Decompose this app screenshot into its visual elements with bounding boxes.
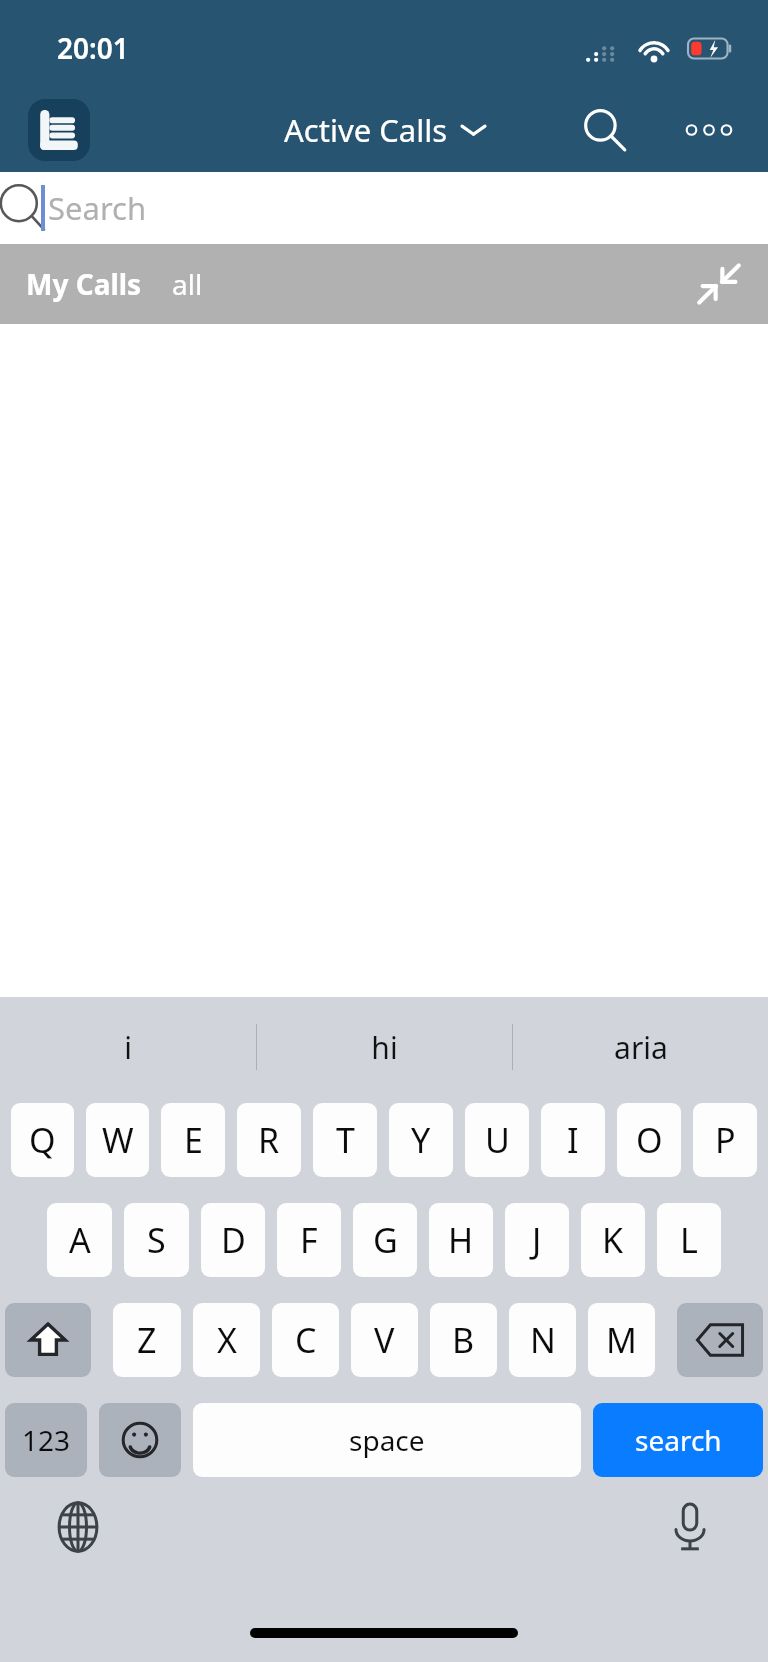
staticText: hi: [371, 1027, 398, 1068]
staticText: 20:01: [57, 29, 129, 67]
staticText: X: [217, 1317, 237, 1363]
staticText: aria: [614, 1027, 668, 1068]
button[interactable]: G: [353, 1203, 417, 1277]
button[interactable]: K: [581, 1203, 645, 1277]
staticText: W: [102, 1117, 134, 1163]
staticText: Y: [411, 1117, 431, 1163]
staticText: C: [295, 1317, 317, 1363]
button[interactable]: W: [86, 1103, 149, 1177]
staticText: H: [448, 1217, 474, 1263]
staticText: Search: [48, 187, 147, 229]
staticText: Active Calls: [284, 109, 447, 151]
staticText: L: [680, 1217, 698, 1263]
button[interactable]: C: [272, 1303, 339, 1377]
button[interactable]: Voice input: [658, 1495, 722, 1559]
staticText: Q: [29, 1117, 56, 1163]
button[interactable]: Collapse: [690, 255, 748, 313]
staticText: Z: [137, 1317, 157, 1363]
staticText: V: [374, 1317, 395, 1363]
button[interactable]: Z: [113, 1303, 181, 1377]
staticText: D: [221, 1217, 246, 1263]
button[interactable]: search: [593, 1403, 763, 1477]
button[interactable]: D: [201, 1203, 265, 1277]
staticText: B: [452, 1317, 475, 1363]
button[interactable]: Backspace: [677, 1303, 763, 1377]
button[interactable]: aria: [513, 997, 768, 1097]
button[interactable]: S: [124, 1203, 189, 1277]
staticText: i: [124, 1027, 132, 1068]
button[interactable]: L: [657, 1203, 721, 1277]
staticText: space: [349, 1421, 425, 1459]
button[interactable]: Emoji: [99, 1403, 181, 1477]
button[interactable]: Q: [11, 1103, 74, 1177]
staticText: A: [69, 1217, 91, 1263]
button[interactable]: T: [313, 1103, 377, 1177]
button[interactable]: B: [430, 1303, 497, 1377]
staticText: search: [635, 1421, 722, 1459]
staticText: J: [532, 1217, 542, 1263]
button[interactable]: O: [617, 1103, 681, 1177]
button[interactable]: E: [161, 1103, 225, 1177]
staticText: K: [602, 1217, 624, 1263]
staticText: P: [715, 1117, 736, 1163]
button[interactable]: H: [429, 1203, 493, 1277]
staticText: I: [567, 1117, 579, 1163]
button[interactable]: space: [193, 1403, 581, 1477]
button[interactable]: F: [277, 1203, 341, 1277]
button[interactable]: Search: [0, 172, 768, 244]
button[interactable]: hi: [257, 997, 512, 1097]
button[interactable]: i: [0, 997, 256, 1097]
button[interactable]: R: [237, 1103, 301, 1177]
staticText: R: [258, 1117, 280, 1163]
button[interactable]: J: [505, 1203, 569, 1277]
button[interactable]: U: [465, 1103, 529, 1177]
staticText: M: [606, 1317, 637, 1363]
button[interactable]: Active Calls: [284, 109, 485, 151]
button[interactable]: I: [541, 1103, 605, 1177]
staticText: N: [530, 1317, 556, 1363]
staticText: 123: [22, 1421, 71, 1459]
staticText: U: [485, 1117, 510, 1163]
button[interactable]: Search: [574, 99, 636, 161]
staticText: all: [172, 265, 203, 303]
staticText: E: [184, 1117, 203, 1163]
button[interactable]: More options: [678, 99, 740, 161]
button[interactable]: P: [693, 1103, 757, 1177]
button[interactable]: Y: [389, 1103, 453, 1177]
staticText: T: [336, 1117, 355, 1163]
button[interactable]: App menu: [28, 99, 90, 161]
staticText: G: [373, 1217, 398, 1263]
staticText: S: [147, 1217, 166, 1263]
button[interactable]: M: [588, 1303, 655, 1377]
button[interactable]: 123: [5, 1403, 87, 1477]
button[interactable]: Change keyboard language: [46, 1495, 110, 1559]
button[interactable]: My Calls: [22, 261, 146, 307]
staticText: F: [300, 1217, 318, 1263]
button[interactable]: A: [47, 1203, 112, 1277]
staticText: My Calls: [26, 265, 142, 303]
button[interactable]: V: [351, 1303, 418, 1377]
button[interactable]: N: [509, 1303, 576, 1377]
button[interactable]: Shift: [5, 1303, 91, 1377]
button[interactable]: all: [168, 261, 207, 307]
button[interactable]: X: [193, 1303, 260, 1377]
staticText: O: [636, 1117, 663, 1163]
